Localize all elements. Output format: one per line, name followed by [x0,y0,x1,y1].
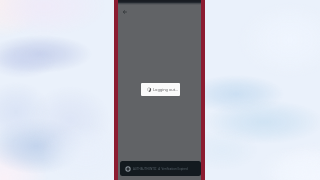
staticText: AUTHAUTHENTIC A Verification Expired [133,167,188,171]
button[interactable]: Back [119,6,130,17]
button[interactable]: AUTHAUTHENTIC A Verification Expired [120,161,201,176]
staticText: Logging out... [153,87,179,92]
